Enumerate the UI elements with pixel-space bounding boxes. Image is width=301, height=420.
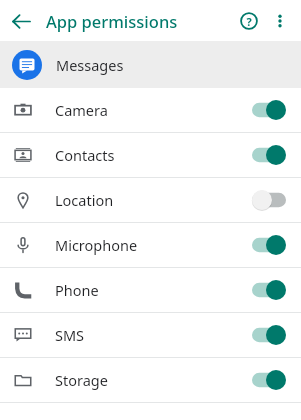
button[interactable]: Help (233, 5, 265, 37)
staticText: Location (55, 190, 114, 210)
button[interactable]: Contacts permission toggle (249, 139, 289, 171)
button[interactable]: Location (0, 178, 301, 222)
button[interactable]: Location permission toggle (249, 184, 289, 216)
staticText: Messages (56, 55, 124, 75)
staticText: Phone (55, 280, 99, 300)
button[interactable]: Microphone permission toggle (249, 229, 289, 261)
button[interactable]: Phone permission toggle (249, 274, 289, 306)
button[interactable]: SMS (0, 313, 301, 357)
button[interactable]: Messages (0, 41, 301, 88)
button[interactable]: SMS permission toggle (249, 319, 289, 351)
staticText: ? (246, 14, 252, 29)
button[interactable]: Storage (0, 358, 301, 402)
staticText: App permissions (46, 10, 178, 32)
button[interactable]: Contacts (0, 133, 301, 177)
staticText: SMS (55, 325, 85, 345)
button[interactable]: Storage permission toggle (249, 364, 289, 396)
staticText: Camera (55, 100, 108, 120)
button[interactable]: Camera (0, 88, 301, 132)
staticText: Microphone (55, 235, 138, 255)
button[interactable]: Phone (0, 268, 301, 312)
staticText: Storage (55, 370, 108, 390)
button[interactable]: More options (265, 6, 295, 36)
button[interactable]: Back (6, 6, 36, 36)
staticText: Contacts (55, 145, 115, 165)
button[interactable]: Camera permission toggle (249, 94, 289, 126)
button[interactable]: Microphone (0, 223, 301, 267)
